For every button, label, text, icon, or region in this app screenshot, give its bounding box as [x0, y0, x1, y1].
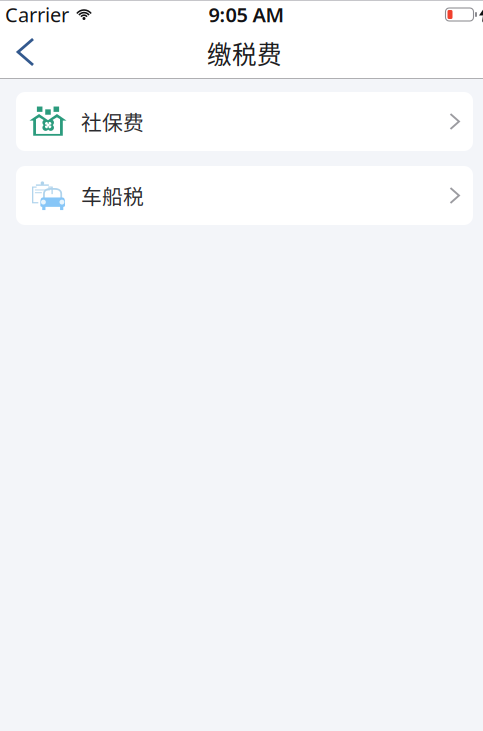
staticText: 社保费	[81, 106, 144, 136]
staticText: Carrier	[5, 1, 69, 28]
button[interactable]: 车船税	[16, 166, 473, 225]
button[interactable]: 社保费	[16, 92, 473, 151]
button[interactable]: Back	[0, 28, 45, 78]
staticText: 车船税	[81, 180, 144, 210]
staticText: 缴税费	[207, 35, 282, 71]
staticText: 9:05 AM	[208, 1, 284, 28]
